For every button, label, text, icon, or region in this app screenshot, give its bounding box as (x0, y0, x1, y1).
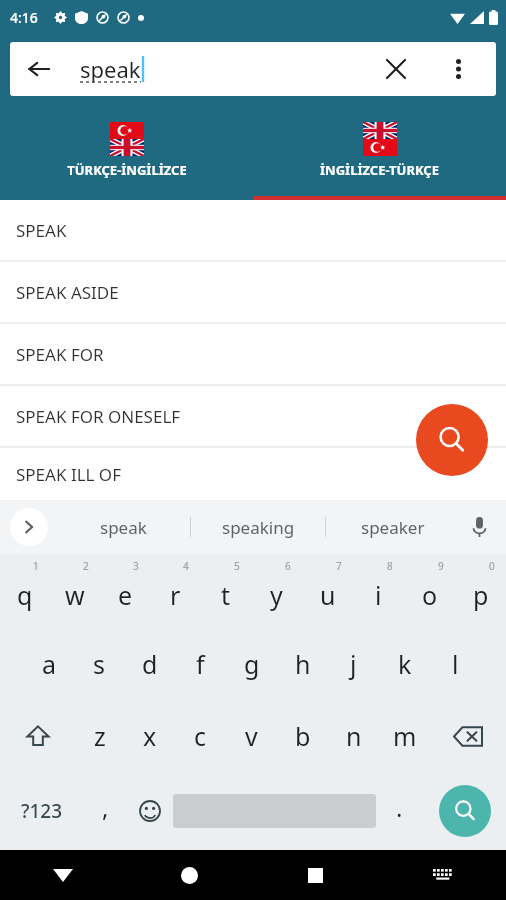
button[interactable]: More options (436, 47, 480, 91)
staticText: 7 (336, 559, 342, 573)
staticText: 8 (387, 559, 393, 573)
button[interactable]: n (328, 700, 379, 772)
button[interactable]: Emoji (126, 772, 173, 850)
button[interactable]: p (455, 554, 506, 628)
button[interactable]: SPEAK ILL OF (0, 448, 506, 500)
button[interactable]: g (226, 628, 277, 700)
button[interactable]: u (302, 554, 353, 628)
staticText: w (65, 578, 85, 612)
button[interactable]: SPEAK FOR ONESELF (0, 386, 506, 446)
button[interactable]: f (175, 628, 226, 700)
staticText: İNGİLİZCE-TÜRKÇE (320, 161, 439, 179)
button[interactable]: Search (439, 785, 491, 837)
button[interactable]: SPEAK (0, 200, 506, 260)
button[interactable]: SPEAK FOR (0, 324, 506, 384)
button[interactable]: d (124, 628, 175, 700)
button[interactable]: Back (16, 46, 62, 92)
staticText: e (118, 578, 133, 612)
staticText: u (320, 578, 336, 612)
staticText: k (398, 647, 412, 681)
button[interactable]: w (50, 554, 100, 628)
button[interactable]: l (430, 628, 481, 700)
button[interactable]: Backspace (430, 700, 506, 772)
staticText: h (295, 647, 311, 681)
staticText: p (473, 578, 489, 612)
staticText: i (375, 578, 382, 612)
staticText: SPEAK ASIDE (16, 281, 119, 304)
button[interactable]: v (226, 700, 277, 772)
staticText: , (102, 791, 109, 824)
button[interactable]: Search (416, 404, 488, 476)
staticText: d (142, 647, 158, 681)
staticText: ?123 (21, 798, 63, 824)
staticText: SPEAK ILL OF (16, 463, 121, 486)
staticText: 0 (489, 559, 495, 573)
button[interactable]: Clear (374, 47, 418, 91)
staticText: SPEAK FOR (16, 343, 104, 366)
button[interactable]: Voice input (460, 508, 498, 546)
button[interactable]: b (277, 700, 328, 772)
staticText: s (93, 647, 105, 681)
staticText: t (221, 578, 231, 612)
staticText: v (245, 719, 258, 753)
staticText: n (346, 719, 362, 753)
staticText: a (42, 647, 57, 681)
button[interactable]: k (379, 628, 430, 700)
button[interactable]: z (75, 700, 125, 772)
staticText: z (94, 719, 106, 753)
staticText: b (295, 719, 311, 753)
staticText: g (244, 647, 260, 681)
staticText: speaking (222, 516, 295, 539)
staticText: x (143, 719, 157, 753)
staticText: 4 (183, 559, 189, 573)
button[interactable]: speaking (191, 500, 325, 554)
button[interactable]: y (251, 554, 302, 628)
button[interactable]: Recent apps (252, 850, 379, 900)
staticText: speak (80, 54, 141, 84)
button[interactable]: i (353, 554, 404, 628)
staticText: f (196, 647, 205, 681)
button[interactable]: Home (126, 850, 252, 900)
staticText: 2 (83, 559, 89, 573)
button[interactable]: Back (0, 850, 126, 900)
staticText: . (396, 791, 403, 824)
button[interactable]: Shift (0, 700, 75, 772)
button[interactable]: m (379, 700, 430, 772)
button[interactable]: o (404, 554, 455, 628)
staticText: o (422, 578, 438, 612)
button[interactable]: a (24, 628, 74, 700)
button[interactable]: e (100, 554, 150, 628)
button[interactable]: j (328, 628, 379, 700)
button[interactable]: İNGİLİZCE-TÜRKÇE (253, 110, 506, 190)
button[interactable]: speak (56, 500, 190, 554)
button[interactable]: ?123 (0, 772, 84, 850)
staticText: c (194, 719, 207, 753)
staticText: 5 (234, 559, 240, 573)
staticText: 9 (438, 559, 444, 573)
button[interactable]: r (150, 554, 200, 628)
staticText: SPEAK FOR ONESELF (16, 405, 181, 428)
staticText: j (350, 647, 357, 681)
staticText: speaker (361, 516, 425, 539)
staticText: m (393, 719, 417, 753)
button[interactable]: TÜRKÇE-İNGİLİZCE (0, 110, 253, 190)
button[interactable]: , (84, 772, 126, 850)
button[interactable]: More suggestions (10, 508, 48, 546)
button[interactable]: x (125, 700, 175, 772)
staticText: 4:16 (10, 8, 38, 27)
staticText: 3 (133, 559, 139, 573)
staticText: 6 (285, 559, 291, 573)
button[interactable]: SPEAK ASIDE (0, 262, 506, 322)
button[interactable]: s (74, 628, 124, 700)
button[interactable]: . (376, 772, 423, 850)
button[interactable]: c (175, 700, 226, 772)
button[interactable]: speaker (326, 500, 460, 554)
button[interactable]: t (200, 554, 251, 628)
button[interactable]: q (0, 554, 50, 628)
staticText: TÜRKÇE-İNGİLİZCE (67, 161, 187, 179)
staticText: y (270, 578, 283, 612)
button[interactable]: Switch keyboard (379, 850, 506, 900)
button[interactable]: h (277, 628, 328, 700)
staticText: SPEAK (16, 219, 67, 242)
